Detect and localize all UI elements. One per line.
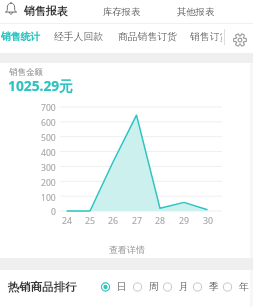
staticText: 年 <box>239 281 249 293</box>
staticText: 销售统计 <box>1 31 41 43</box>
staticText: 400 <box>41 147 56 159</box>
button[interactable]: 销售报表 <box>21 0 71 24</box>
staticText: 27 <box>132 215 143 227</box>
staticText: 销售金额 <box>9 67 43 78</box>
button[interactable]: 季 <box>189 278 219 296</box>
staticText: 30 <box>203 215 214 227</box>
staticText: 200 <box>41 177 56 189</box>
staticText: 月 <box>179 281 189 293</box>
staticText: 600 <box>41 117 56 129</box>
staticText: 100 <box>41 192 56 204</box>
button[interactable]: 月 <box>159 278 189 296</box>
staticText: 300 <box>41 162 56 174</box>
button[interactable]: 销售统计 <box>0 25 43 49</box>
staticText: 周 <box>149 281 159 293</box>
staticText: 500 <box>41 132 56 144</box>
button[interactable]: 经手人回款 <box>52 25 105 49</box>
staticText: 24 <box>62 215 73 227</box>
staticText: 销售订货 <box>190 31 222 43</box>
staticText: 其他报表 <box>177 6 215 18</box>
staticText: 季 <box>209 281 219 293</box>
staticText: 29 <box>179 215 190 227</box>
staticText: 28 <box>155 215 166 227</box>
button[interactable]: 其他报表 <box>174 0 218 24</box>
staticText: 0 <box>51 206 56 218</box>
staticText: 26 <box>108 215 119 227</box>
button[interactable]: 销售订货 <box>188 25 222 49</box>
button[interactable]: 商品销售订货 <box>116 25 179 49</box>
staticText: 日 <box>117 281 127 293</box>
staticText: 经手人回款 <box>54 31 103 43</box>
staticText: 查看详情 <box>109 244 145 255</box>
staticText: 热销商品排行 <box>8 280 77 294</box>
button[interactable]: 年 <box>219 278 249 296</box>
staticText: 1025.29元 <box>8 76 74 95</box>
staticText: 库存报表 <box>103 6 141 18</box>
staticText: 700 <box>41 102 56 114</box>
button[interactable]: 查看详情 <box>0 241 253 258</box>
button[interactable]: Settings <box>229 28 251 51</box>
button[interactable]: Notifications <box>0 0 22 17</box>
staticText: 25 <box>85 215 96 227</box>
button[interactable]: 日 <box>97 278 127 296</box>
staticText: 销售报表 <box>24 5 68 19</box>
staticText: 商品销售订货 <box>118 31 177 43</box>
button[interactable]: 周 <box>129 278 159 296</box>
button[interactable]: 库存报表 <box>100 0 144 24</box>
